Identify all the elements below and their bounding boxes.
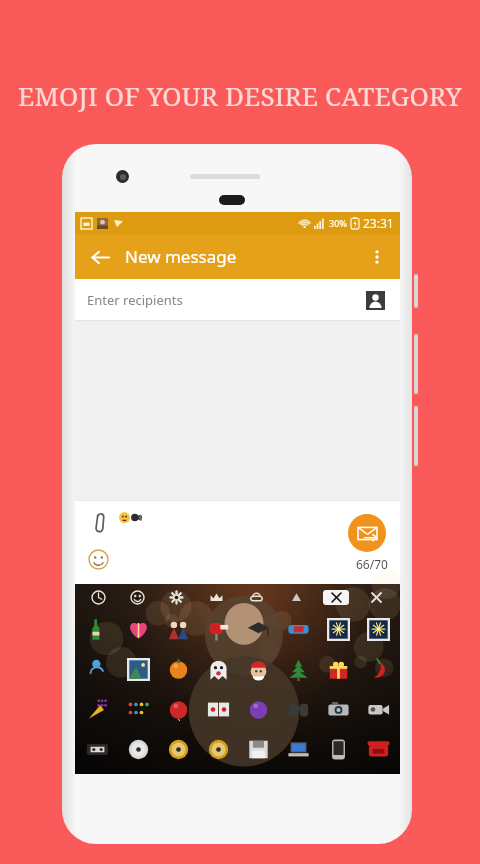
button[interactable]: Objects (196, 586, 236, 608)
button[interactable]: camera (318, 690, 358, 728)
button[interactable]: telephone (358, 730, 398, 768)
staticText: Enter recipients (87, 291, 183, 309)
button[interactable]: fireworks (358, 610, 398, 648)
staticText: 23:31 (363, 215, 394, 231)
button[interactable]: Symbols (276, 586, 316, 608)
button[interactable]: Back (83, 240, 117, 274)
button[interactable]: laptop (278, 730, 318, 768)
button[interactable]: grad (238, 610, 278, 648)
staticText: EMOJI OF YOUR DESIRE CATEGORY (0, 78, 480, 113)
button[interactable]: photo (118, 650, 158, 688)
button[interactable]: Close (356, 586, 396, 608)
button[interactable]: chili (358, 650, 398, 688)
button[interactable]: Attach (83, 508, 113, 538)
button[interactable]: binoculars (278, 690, 318, 728)
button[interactable]: Emoji (83, 544, 113, 574)
button[interactable]: Smileys (118, 586, 157, 608)
button[interactable]: dolls (158, 610, 198, 648)
button[interactable]: More options (360, 240, 394, 274)
button[interactable]: heart (118, 610, 158, 648)
button[interactable]: vhs (77, 730, 118, 768)
button[interactable]: Send message (348, 514, 386, 552)
button[interactable]: disc (198, 730, 238, 768)
button[interactable]: bottle (77, 610, 118, 648)
button[interactable]: phone (318, 730, 358, 768)
button[interactable]: Backspace (323, 590, 349, 605)
button[interactable]: Recent (79, 586, 118, 608)
button[interactable]: balloon (158, 690, 198, 728)
button[interactable]: Travel (236, 586, 276, 608)
button[interactable]: tree (278, 650, 318, 688)
button[interactable]: cards (198, 690, 238, 728)
button[interactable]: confetti (118, 690, 158, 728)
button[interactable]: floppy (238, 730, 278, 768)
button[interactable]: wind (77, 650, 118, 688)
button[interactable]: fireworks (318, 610, 358, 648)
staticText: 66/70 (356, 556, 388, 572)
button[interactable]: ticket (278, 610, 318, 648)
button[interactable]: ghost (198, 650, 238, 688)
button[interactable]: Nature (157, 586, 196, 608)
button[interactable]: mailbox (198, 610, 238, 648)
button[interactable]: ball (238, 690, 278, 728)
button[interactable]: cd (118, 730, 158, 768)
button[interactable]: dvd (158, 730, 198, 768)
button[interactable]: party (77, 690, 118, 728)
button[interactable]: pumpkin (158, 650, 198, 688)
button[interactable]: Enter recipients (75, 279, 400, 321)
staticText: New message (125, 245, 237, 268)
button[interactable]: santa (238, 650, 278, 688)
button[interactable]: gift (318, 650, 358, 688)
button[interactable]: videocam (358, 690, 398, 728)
button[interactable]: Add contact (362, 287, 388, 313)
staticText: 30% (329, 217, 347, 229)
